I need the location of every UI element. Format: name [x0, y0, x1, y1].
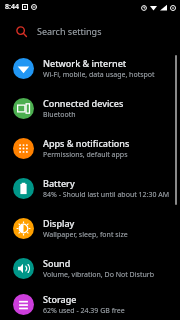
staticText: Storage — [43, 293, 77, 305]
staticText: Sound — [43, 257, 71, 269]
button[interactable]: Storage — [0, 288, 180, 320]
button[interactable]: Connected devices — [0, 88, 180, 128]
staticText: Wallpaper, sleep, font size — [43, 230, 128, 240]
staticText: Network & internet — [43, 57, 127, 69]
staticText: Permissions, default apps — [43, 150, 128, 160]
button[interactable]: Search settings — [0, 14, 180, 48]
button[interactable]: Display — [0, 208, 180, 248]
staticText: 62% used - 24.39 GB free — [43, 306, 125, 316]
staticText: Display — [43, 217, 75, 229]
button[interactable]: Battery — [0, 168, 180, 208]
button[interactable]: Sound — [0, 248, 180, 288]
staticText: 8:44 — [5, 2, 19, 12]
staticText: Search settings — [37, 25, 102, 37]
button[interactable]: Apps & notifications — [0, 128, 180, 168]
staticText: Battery — [43, 177, 75, 189]
staticText: Bluetooth — [43, 110, 76, 120]
staticText: 84% - Should last until about 12:30 AM — [43, 190, 170, 200]
staticText: Wi-Fi, mobile, data usage, hotspot — [43, 70, 155, 80]
button[interactable]: Network & internet — [0, 48, 180, 88]
staticText: Volume, vibration, Do Not Disturb — [43, 270, 154, 280]
staticText: Apps & notifications — [43, 137, 130, 149]
staticText: Connected devices — [43, 97, 124, 109]
